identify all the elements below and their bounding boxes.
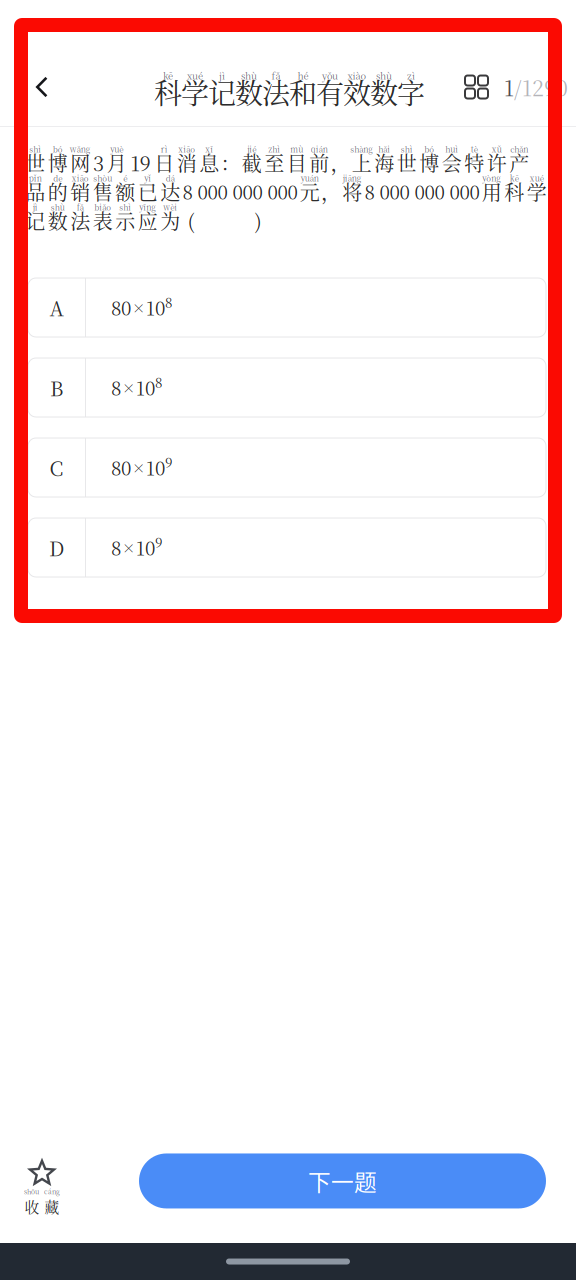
button[interactable]: D — [28, 518, 546, 577]
staticText: shì — [119, 201, 131, 213]
staticText: ( ) — [187, 206, 261, 235]
staticText: 效 — [343, 72, 371, 112]
button[interactable]: Question list — [465, 75, 504, 98]
staticText: wèi — [163, 201, 177, 213]
staticText: 9 — [155, 532, 162, 552]
staticText: 80 — [111, 454, 131, 481]
staticText: 数 — [235, 72, 263, 112]
staticText: xiāo — [72, 172, 89, 184]
staticText: shù — [376, 69, 392, 82]
staticText: ： — [220, 148, 240, 177]
staticText: shù — [51, 201, 65, 213]
staticText: 售 — [93, 177, 113, 206]
staticText: jiāng — [343, 172, 362, 184]
staticText: de — [53, 172, 62, 184]
staticText: hǎi — [378, 143, 390, 155]
staticText: ， — [330, 148, 350, 177]
staticText: jì — [33, 201, 38, 213]
staticText: biǎo — [94, 201, 111, 213]
staticText: shù — [241, 69, 257, 82]
staticText: yòng — [482, 172, 501, 184]
staticText: 前 — [309, 148, 329, 177]
staticText: é — [123, 172, 127, 184]
staticText: wǎng — [70, 143, 91, 155]
staticText: bó — [424, 143, 434, 155]
staticText: jì — [219, 69, 225, 82]
staticText: 收 — [24, 1196, 39, 1217]
staticText: B — [50, 373, 63, 402]
staticText: 世 — [25, 148, 45, 177]
staticText: 法 — [262, 72, 290, 112]
staticText: 特 — [464, 148, 484, 177]
staticText: A — [49, 293, 63, 322]
staticText: jié — [247, 143, 256, 155]
staticText: qián — [311, 143, 328, 155]
staticText: 的 — [48, 177, 68, 206]
staticText: xī — [205, 143, 213, 155]
button[interactable]: 下一题 — [139, 1153, 546, 1208]
staticText: 科 — [154, 72, 182, 112]
staticText: shōu — [24, 1187, 39, 1196]
staticText: 息 — [199, 148, 219, 177]
staticText: xǔ — [492, 143, 502, 155]
staticText: 科 — [504, 177, 524, 206]
staticText: 会 — [442, 148, 462, 177]
staticText: yǒu — [322, 69, 338, 82]
staticText: fǎ — [271, 69, 280, 82]
staticText: 消 — [177, 148, 197, 177]
staticText: 网 — [70, 148, 90, 177]
staticText: 80 — [111, 294, 131, 321]
staticText: 达 — [160, 177, 180, 206]
staticText: mù — [290, 143, 303, 155]
staticText: shàng — [350, 143, 373, 155]
staticText: shòu — [93, 172, 112, 184]
staticText: × — [122, 538, 135, 557]
staticText: kē — [510, 172, 519, 184]
staticText: 3 — [93, 148, 104, 177]
staticText: 8 — [111, 374, 121, 401]
staticText: 上 — [352, 148, 372, 177]
staticText: yuán — [301, 172, 319, 184]
staticText: × — [122, 378, 135, 397]
staticText: 10 — [146, 294, 165, 321]
staticText: 法 — [70, 206, 90, 235]
staticText: 世 — [397, 148, 417, 177]
staticText: 示 — [115, 206, 135, 235]
staticText: 8 — [165, 292, 172, 312]
staticText: 数 — [370, 72, 398, 112]
staticText: 应 — [138, 206, 158, 235]
staticText: xué — [187, 69, 203, 82]
button[interactable]: B — [28, 358, 546, 417]
staticText: 海 — [374, 148, 394, 177]
button[interactable]: shōu — [0, 1145, 70, 1217]
staticText: 记 — [25, 206, 45, 235]
staticText: 截 — [242, 148, 262, 177]
staticText: 10 — [146, 454, 165, 481]
staticText: ， — [321, 177, 341, 206]
staticText: 8 000 000 000 — [364, 178, 479, 205]
button[interactable]: Back — [0, 76, 58, 97]
staticText: 已 — [138, 177, 158, 206]
staticText: 许 — [487, 148, 507, 177]
staticText: bó — [53, 143, 63, 155]
staticText: hé — [297, 69, 308, 82]
staticText: 额 — [115, 177, 135, 206]
button[interactable]: C — [28, 438, 546, 497]
staticText: zì — [407, 69, 415, 82]
staticText: shì — [29, 143, 41, 155]
staticText: 10 — [136, 534, 155, 561]
staticText: fǎ — [77, 201, 84, 213]
staticText: chǎn — [510, 143, 528, 155]
staticText: xiāo — [178, 143, 195, 155]
staticText: 数 — [48, 206, 68, 235]
staticText: 9 — [165, 452, 172, 472]
staticText: xué — [530, 172, 544, 184]
staticText: huì — [445, 143, 458, 155]
staticText: 字 — [397, 72, 425, 112]
button[interactable]: A — [28, 278, 546, 337]
staticText: 8 000 000 000 — [182, 178, 297, 205]
staticText: D — [49, 533, 64, 562]
